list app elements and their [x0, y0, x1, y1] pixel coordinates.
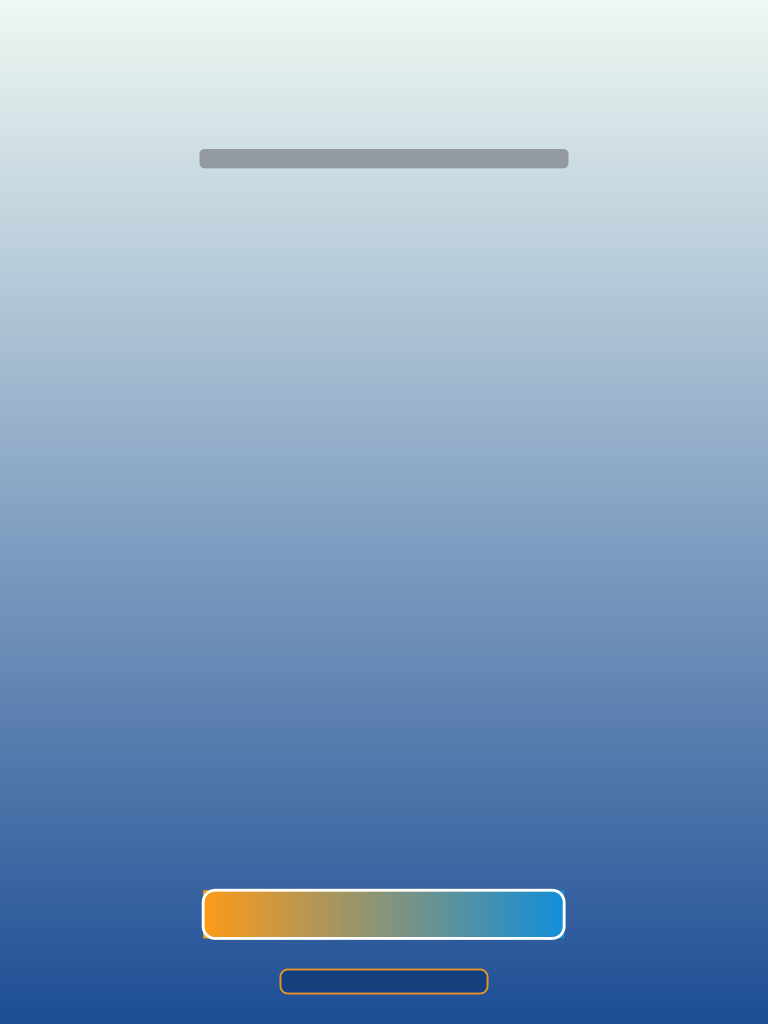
button[interactable]: Continue — [203, 890, 564, 938]
button[interactable]: Secondary action — [280, 969, 487, 993]
